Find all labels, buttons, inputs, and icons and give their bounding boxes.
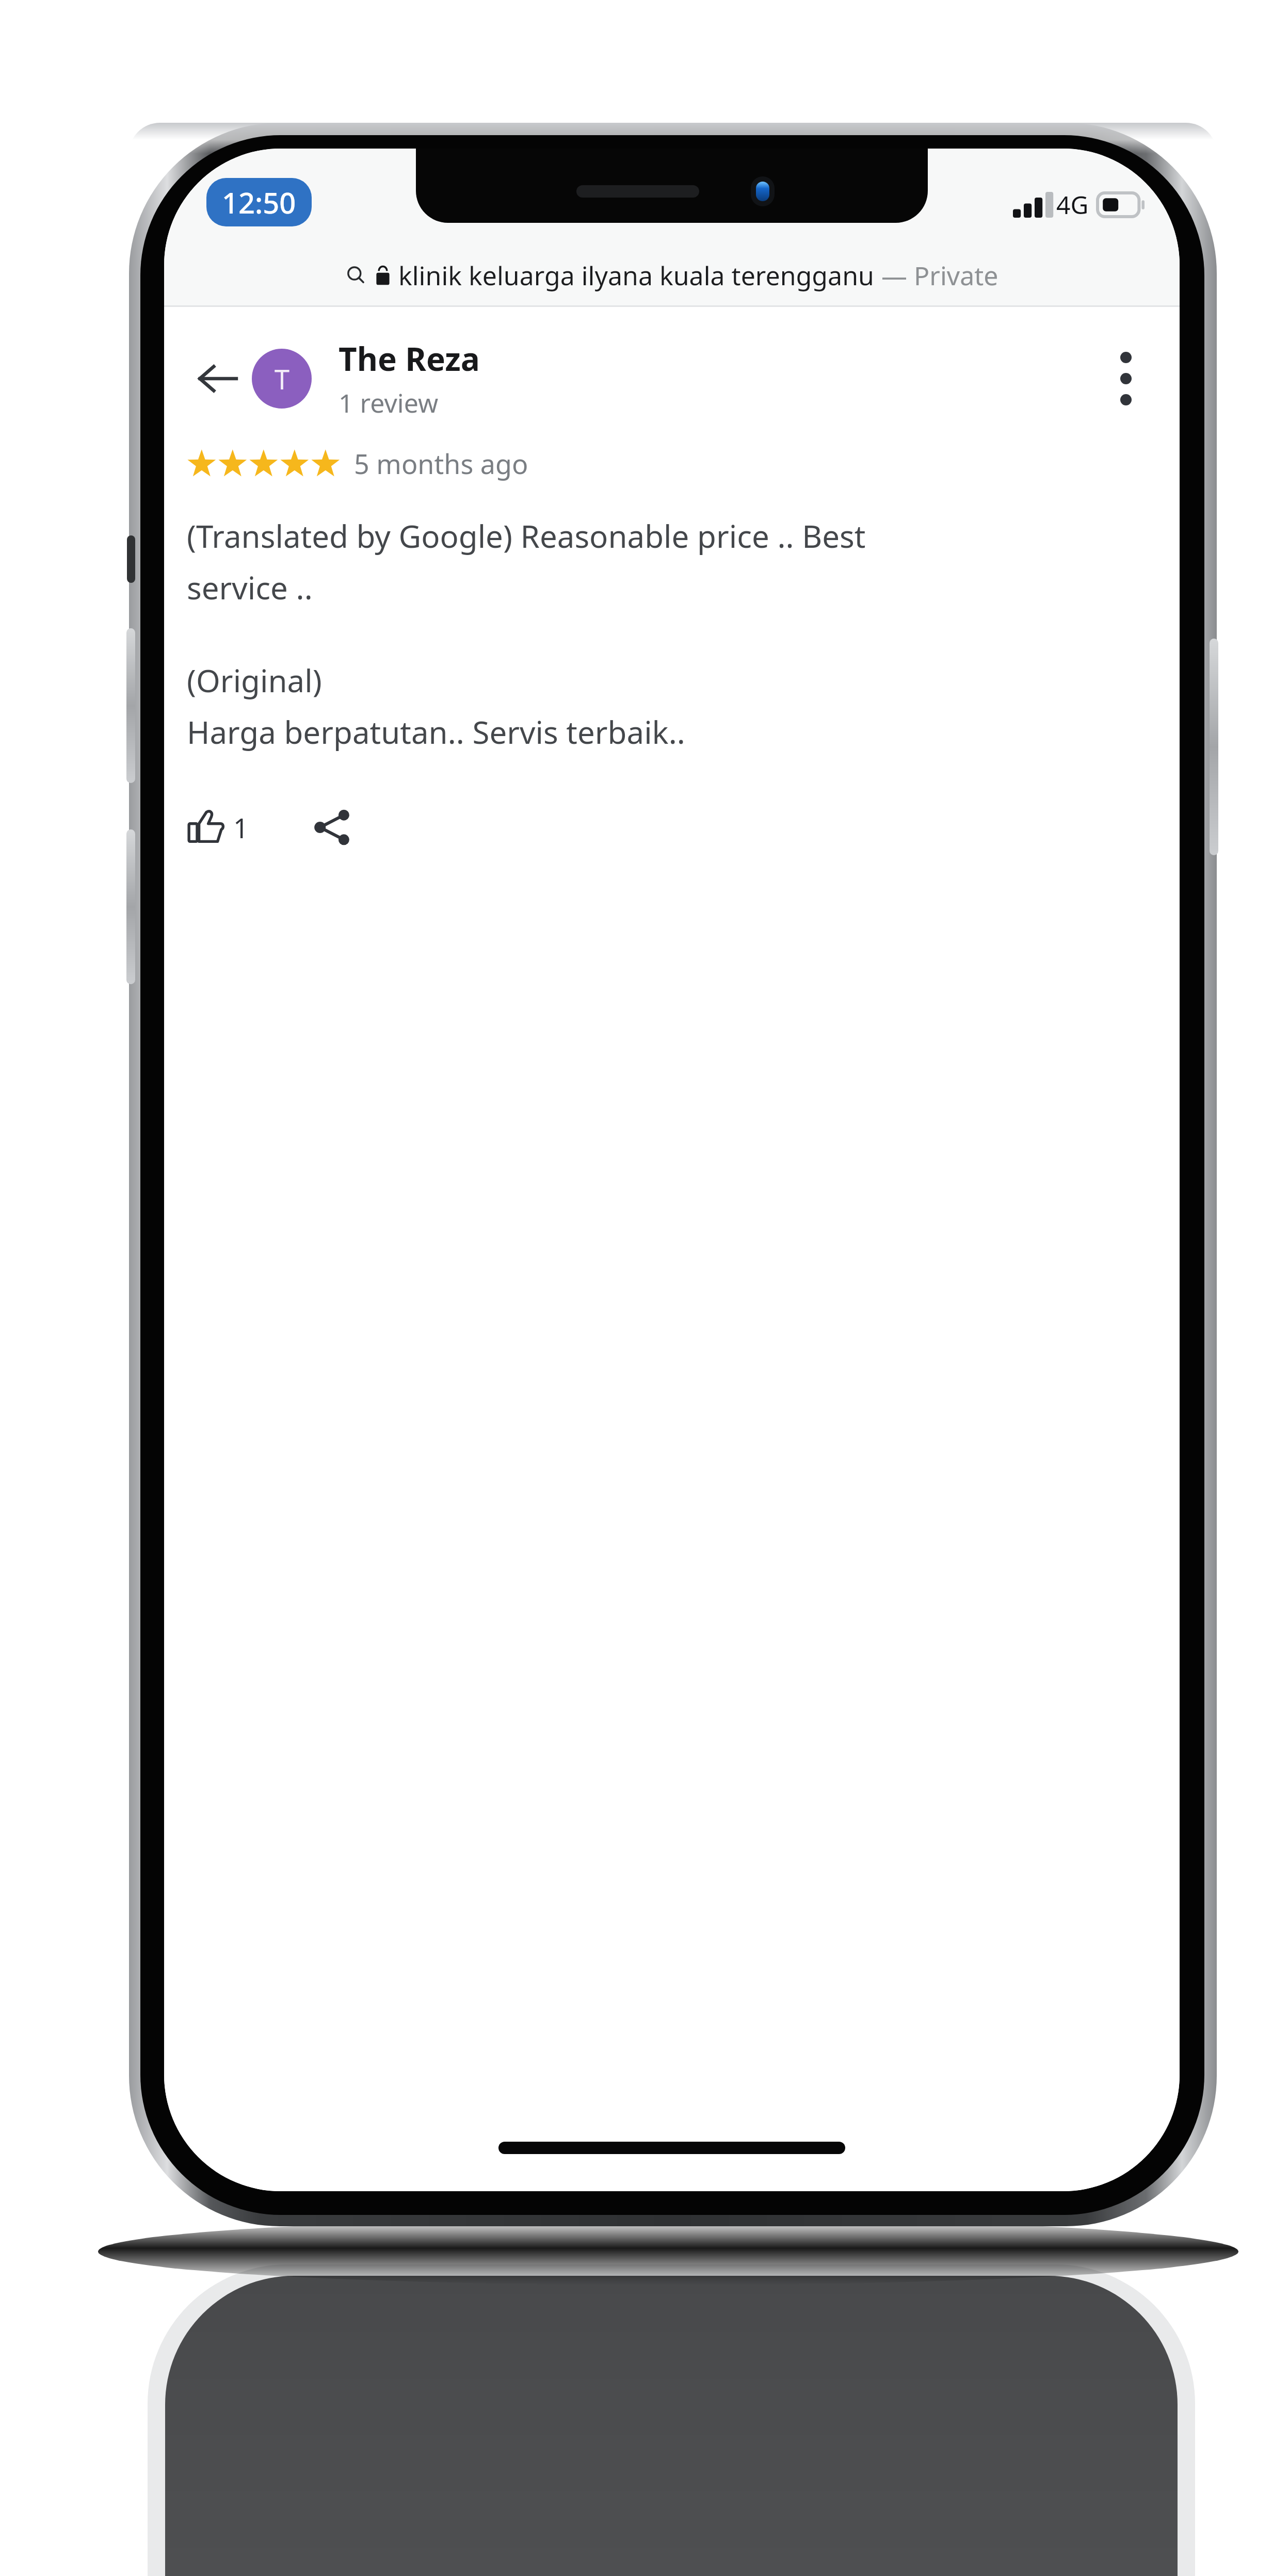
button[interactable]: More options: [1095, 348, 1157, 410]
staticText: (Translated by Google) Reasonable price …: [187, 515, 866, 609]
button[interactable]: Helpful, 1: [181, 804, 256, 851]
staticText: 12:50: [222, 183, 296, 222]
staticText: klinik keluarga ilyana kuala terengganu: [398, 258, 874, 293]
staticText: 4G: [1056, 188, 1089, 221]
staticText: The Reza: [339, 337, 480, 380]
staticText: (Original) Harga berpatutan.. Servis ter…: [187, 659, 685, 753]
button[interactable]: 12:50: [206, 178, 312, 226]
staticText: — Private: [881, 258, 998, 293]
button[interactable]: The Reza: [339, 337, 1095, 420]
staticText: 1: [233, 809, 249, 846]
staticText: 1 review: [339, 385, 439, 420]
staticText: T: [275, 361, 289, 397]
button[interactable]: Share: [305, 801, 359, 854]
staticText: 5 months ago: [354, 445, 528, 482]
button[interactable]: Back: [187, 348, 249, 410]
button[interactable]: klinik keluarga ilyana kuala terengganu: [164, 246, 1180, 305]
button[interactable]: T: [252, 349, 312, 409]
